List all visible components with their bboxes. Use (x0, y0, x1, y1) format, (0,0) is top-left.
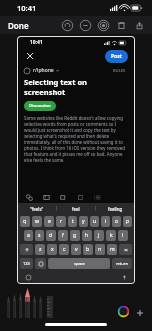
button[interactable]: Share (130, 16, 148, 34)
staticText: n (98, 246, 102, 253)
staticText: 10:41 (17, 3, 37, 13)
button[interactable]: Video (58, 192, 68, 202)
button[interactable]: 10:41 (18, 37, 134, 283)
button[interactable]: t (68, 216, 77, 227)
staticText: i (105, 218, 107, 225)
staticText: p (126, 218, 130, 225)
button[interactable]: Delete (112, 16, 130, 34)
button[interactable]: return (112, 258, 132, 269)
staticText: Discussion (29, 103, 51, 109)
button[interactable]: k (106, 230, 116, 241)
button[interactable]: f (58, 230, 68, 241)
button[interactable]: z (35, 244, 45, 255)
button[interactable]: Emoji (35, 258, 46, 269)
staticText: u (93, 218, 97, 225)
button[interactable]: x (47, 244, 57, 255)
staticText: m (110, 246, 115, 253)
staticText: r/iphone (33, 67, 54, 74)
button[interactable]: a (24, 230, 33, 241)
staticText: return (116, 261, 128, 266)
button[interactable]: Add tool (135, 308, 145, 318)
staticText: a (27, 232, 30, 239)
button[interactable]: w (32, 216, 42, 227)
staticText: RULES (113, 68, 126, 73)
button[interactable]: Markup (94, 16, 112, 34)
staticText: Some websites like Reddit doesn't allow … (24, 115, 128, 163)
button[interactable]: j (94, 230, 104, 241)
staticText: feel (72, 206, 80, 212)
button[interactable]: Drawing tool (12, 294, 17, 318)
button[interactable]: c (59, 244, 69, 255)
button[interactable]: Dictate (120, 273, 128, 281)
button[interactable]: List (92, 192, 102, 202)
staticText: Post (111, 53, 122, 60)
staticText: z (39, 246, 42, 253)
button[interactable]: Shift (20, 244, 33, 255)
button[interactable]: y (79, 216, 88, 227)
staticText: g (73, 232, 77, 239)
button[interactable]: Drawing tool (24, 288, 31, 318)
staticText: j (98, 232, 100, 239)
staticText: 10:41 (30, 39, 43, 46)
button[interactable]: Image (41, 192, 51, 202)
button[interactable]: Delete (119, 244, 132, 255)
button[interactable]: Discussion (24, 101, 56, 111)
button[interactable]: e (44, 216, 54, 227)
staticText: f (62, 232, 64, 239)
staticText: l (122, 232, 124, 239)
button[interactable]: RULES (111, 66, 128, 75)
button[interactable]: Drawing tool (6, 296, 11, 318)
button[interactable]: Drawing tool (32, 295, 37, 318)
button[interactable]: s (35, 230, 44, 241)
button[interactable]: feel (57, 203, 95, 214)
button[interactable]: Link (24, 192, 34, 202)
button[interactable]: g (70, 230, 80, 241)
button[interactable]: p (123, 216, 132, 227)
button[interactable]: Undo (58, 16, 76, 34)
button[interactable]: o (112, 216, 121, 227)
button[interactable]: l (118, 230, 128, 241)
button[interactable]: m (107, 244, 117, 255)
staticText: r (60, 218, 63, 225)
staticText: b (86, 246, 90, 253)
button[interactable]: h (82, 230, 92, 241)
button[interactable]: Bold (75, 192, 85, 202)
staticText: feeling (108, 206, 123, 212)
staticText: Done (8, 20, 29, 31)
staticText: d (49, 232, 53, 239)
staticText: v (75, 246, 78, 253)
staticText: space (74, 261, 85, 266)
button[interactable]: n (95, 244, 105, 255)
staticText: y (82, 218, 85, 225)
button[interactable]: 123 (20, 258, 33, 269)
staticText: c (63, 246, 66, 253)
button[interactable]: "feels" (18, 203, 56, 214)
staticText: t (72, 218, 74, 225)
staticText: k (110, 232, 113, 239)
button[interactable]: Done (0, 17, 37, 34)
button[interactable]: r (56, 216, 66, 227)
button[interactable]: b (83, 244, 93, 255)
staticText: 123 (23, 261, 30, 266)
button[interactable]: feeling (96, 203, 134, 214)
staticText: h (85, 232, 89, 239)
button[interactable]: Redo (76, 16, 94, 34)
staticText: q (23, 218, 27, 225)
button[interactable]: Drawing tool (38, 296, 43, 318)
button[interactable]: Color picker (117, 305, 130, 318)
staticText: o (115, 218, 119, 225)
button[interactable]: Post (105, 50, 128, 63)
button[interactable]: Drawing tool (18, 293, 23, 318)
button[interactable]: u (90, 216, 99, 227)
staticText: Selecting text on screenshot (24, 77, 128, 97)
button[interactable]: q (20, 216, 30, 227)
button[interactable]: Close (24, 50, 36, 62)
button[interactable]: space (48, 258, 110, 269)
staticText: e (48, 218, 51, 225)
button[interactable]: Dictation settings (24, 273, 32, 281)
button[interactable]: v (71, 244, 81, 255)
button[interactable]: Ruler (47, 296, 53, 318)
staticText: s (38, 232, 41, 239)
button[interactable]: d (46, 230, 56, 241)
button[interactable]: i (101, 216, 110, 227)
